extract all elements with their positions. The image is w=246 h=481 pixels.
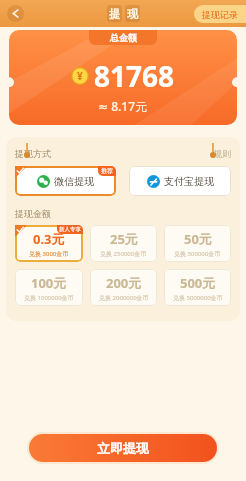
staticText: 提 — [109, 7, 120, 21]
staticText: 推荐 — [101, 167, 113, 175]
button[interactable]: 支付宝提现 — [129, 166, 231, 196]
staticText: 兑换 2000000金币 — [99, 294, 149, 302]
button[interactable]: 25元 — [90, 225, 157, 262]
staticText: 500元 — [180, 274, 216, 292]
staticText: 现 — [127, 7, 138, 21]
button[interactable]: 立即提现 — [29, 434, 217, 462]
staticText: 81768 — [94, 57, 175, 95]
staticText: 总金额 — [110, 32, 137, 43]
staticText: 立即提现 — [97, 440, 149, 456]
staticText: 微信提现 — [54, 175, 94, 188]
staticText: ¥ — [77, 69, 83, 83]
staticText: 50元 — [184, 230, 212, 248]
staticText: 兑换 250000金币 — [100, 250, 147, 258]
staticText: ≈ 8.17元 — [98, 98, 148, 114]
staticText: 兑换 1000000金币 — [24, 294, 74, 302]
staticText: 新人专享 — [59, 226, 81, 233]
staticText: 提现方式 — [15, 148, 51, 159]
button[interactable]: 提现记录 — [194, 5, 246, 23]
button[interactable]: 100元 — [15, 269, 83, 306]
button[interactable]: Back — [7, 5, 24, 22]
button[interactable]: 50元 — [164, 225, 231, 262]
staticText: 200元 — [106, 274, 142, 292]
button[interactable]: 0.3元 — [15, 225, 83, 262]
button[interactable]: 微信提现 — [15, 166, 116, 196]
staticText: 兑换 500000金币 — [174, 250, 221, 258]
button[interactable]: 200元 — [90, 269, 157, 306]
staticText: 提现金额 — [15, 208, 51, 219]
staticText: 兑换 5000000金币 — [173, 294, 223, 302]
staticText: 兑换 3000金币 — [29, 250, 69, 258]
button[interactable]: 500元 — [164, 269, 231, 306]
staticText: 规则 — [213, 148, 231, 159]
staticText: 100元 — [31, 274, 67, 292]
staticText: 支付宝提现 — [164, 175, 214, 188]
button[interactable]: 规则 — [213, 148, 231, 159]
staticText: 0.3元 — [33, 230, 65, 248]
staticText: 25元 — [110, 230, 138, 248]
staticText: 提现记录 — [202, 9, 238, 20]
